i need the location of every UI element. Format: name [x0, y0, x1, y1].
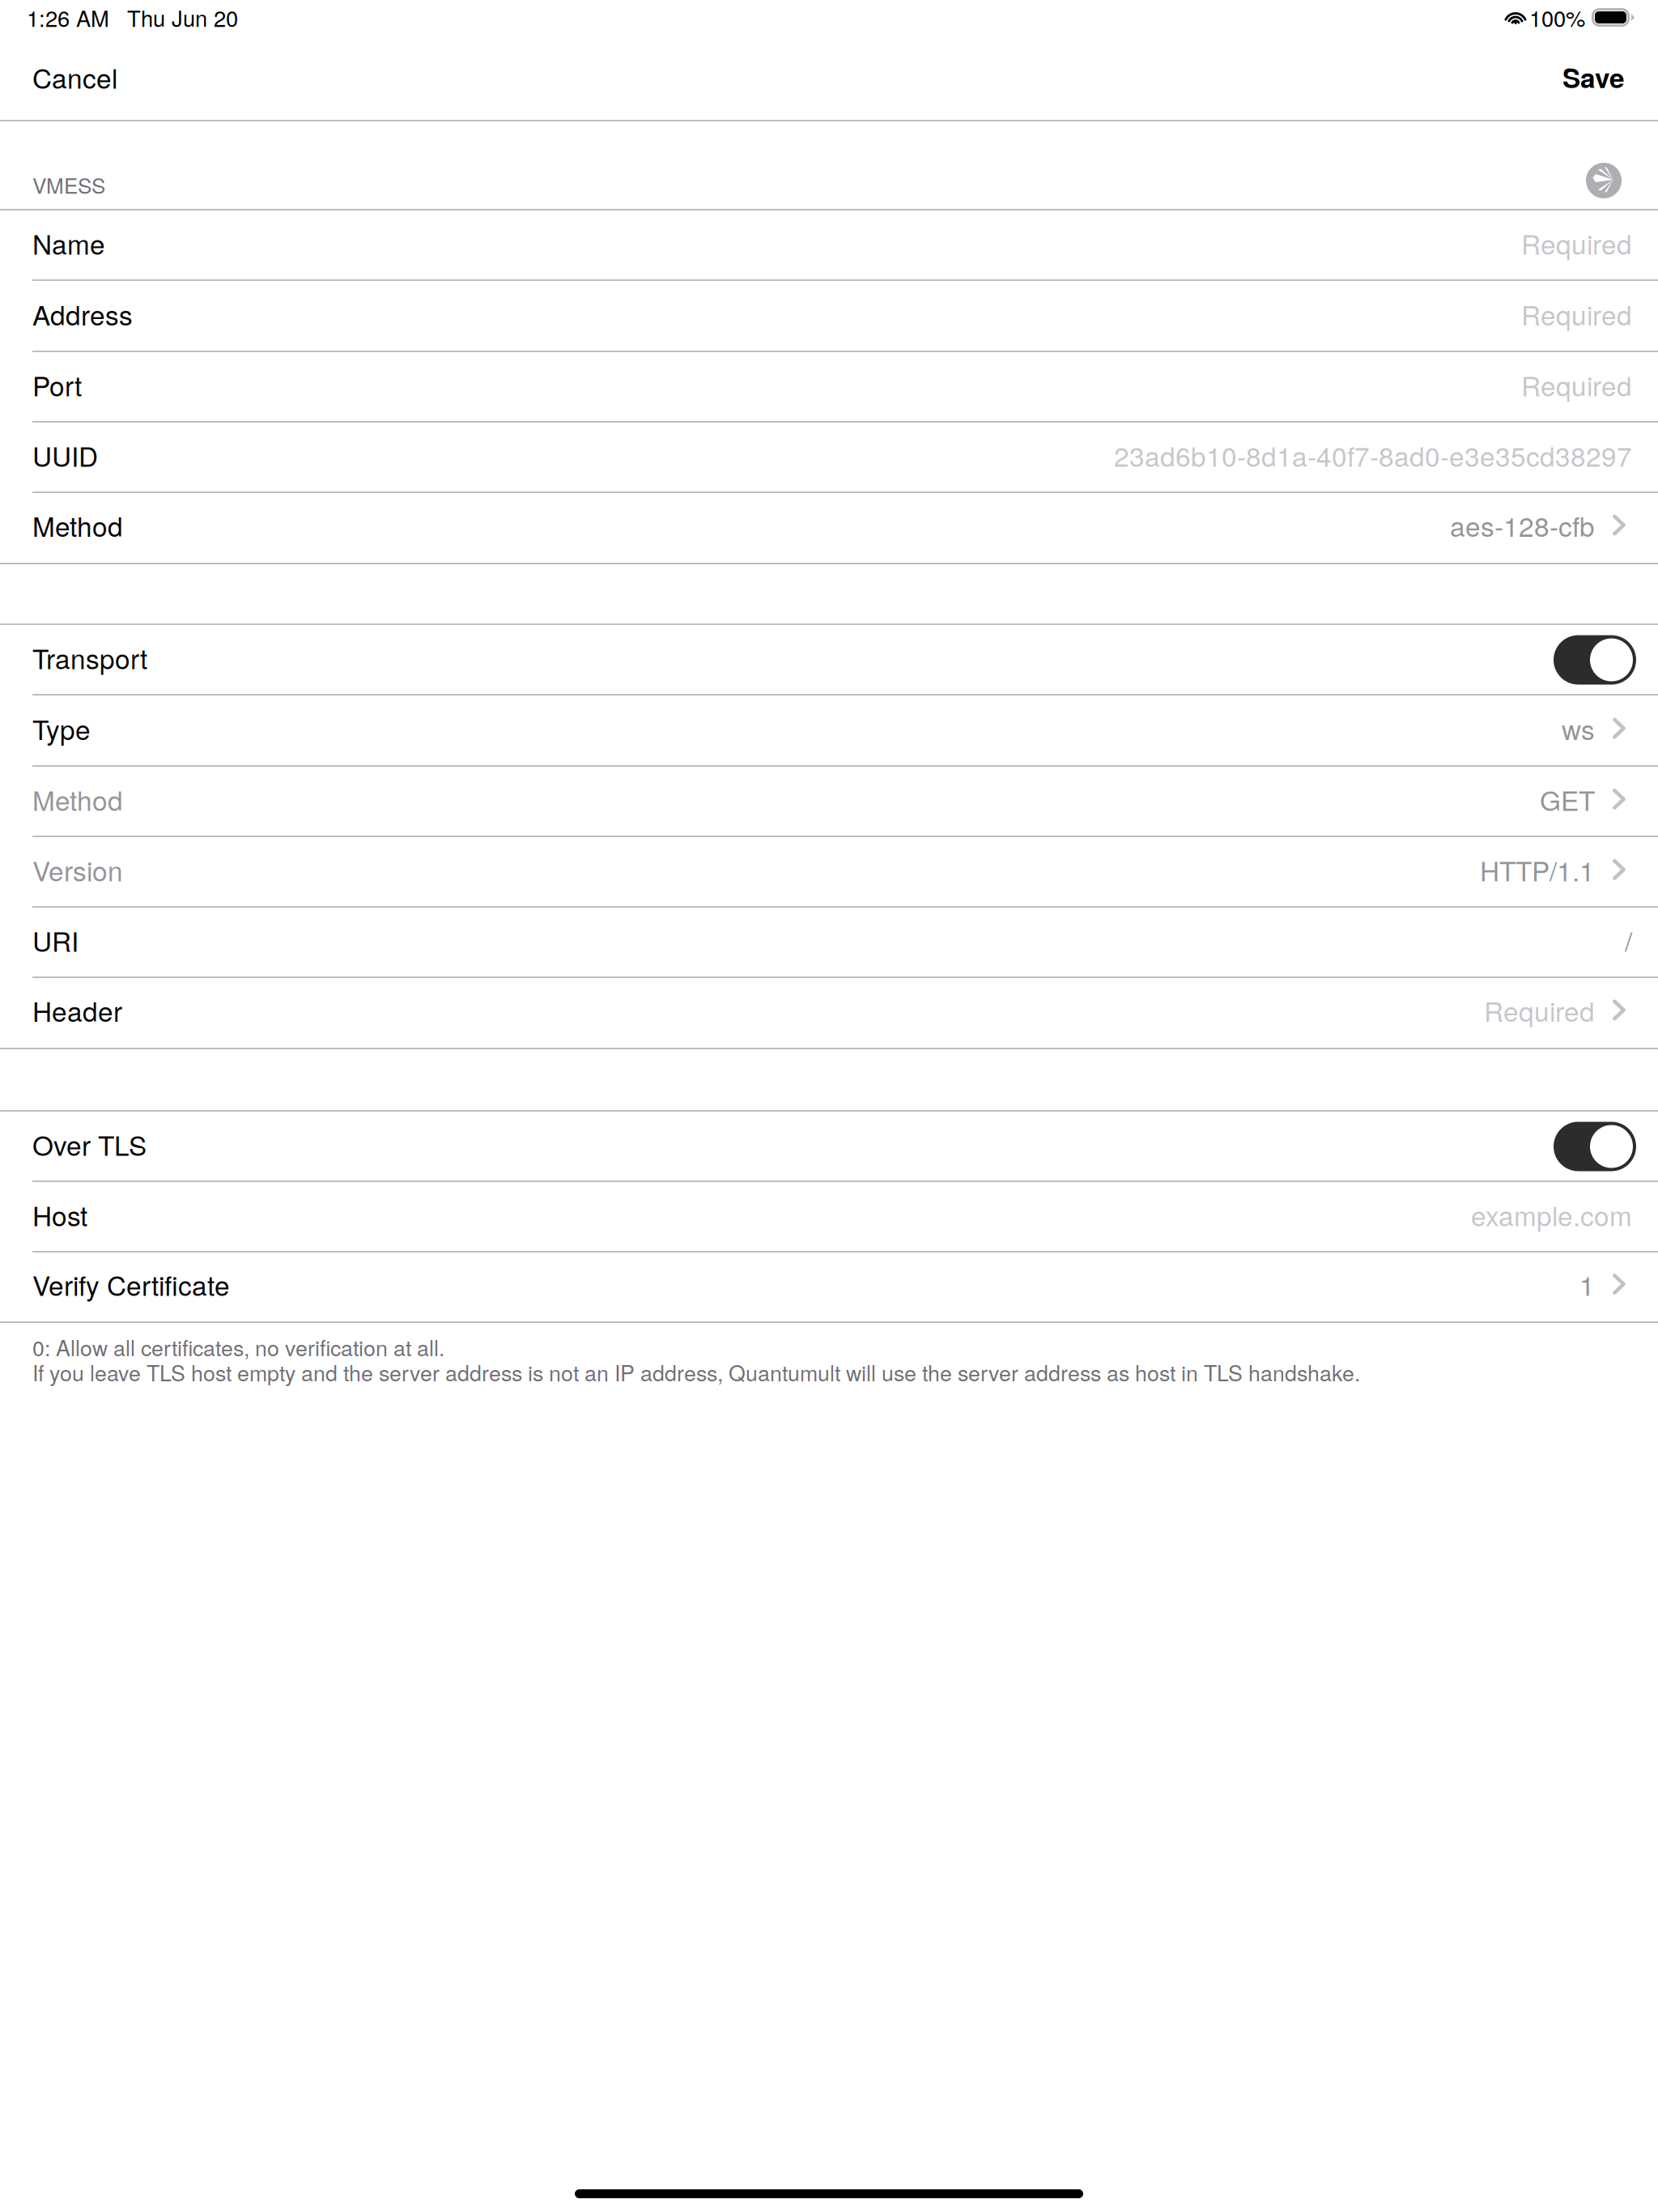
- button[interactable]: Method: [0, 767, 1658, 837]
- button[interactable]: Port: [0, 352, 1658, 423]
- button[interactable]: Method: [0, 493, 1658, 563]
- staticText: Name: [32, 224, 105, 262]
- staticText: Verify Certificate: [32, 1265, 230, 1303]
- button[interactable]: Transport: [0, 625, 1658, 696]
- staticText: Transport: [32, 638, 147, 677]
- staticText: aes-128-cfb: [1450, 506, 1595, 544]
- staticText: 100%: [1529, 2, 1585, 33]
- button[interactable]: Host: [0, 1182, 1658, 1253]
- staticText: 1:26 AM: [27, 2, 109, 33]
- button[interactable]: Address: [0, 281, 1658, 352]
- staticText: If you leave TLS host empty and the serv…: [32, 1357, 1360, 1387]
- staticText: Method: [32, 506, 123, 544]
- button[interactable]: Header: [0, 978, 1658, 1048]
- button[interactable]: Over TLS: [0, 1112, 1658, 1182]
- button[interactable]: Name: [0, 211, 1658, 281]
- staticText: 23ad6b10-8d1a-40f7-8ad0-e3e35cd38297: [1114, 436, 1632, 474]
- button[interactable]: Verify Certificate: [0, 1253, 1658, 1321]
- staticText: Over TLS: [32, 1125, 147, 1163]
- staticText: Version: [32, 850, 123, 889]
- staticText: Port: [32, 365, 82, 404]
- button[interactable]: UUID: [0, 423, 1658, 493]
- staticText: Required: [1521, 294, 1632, 333]
- staticText: Thu Jun 20: [127, 2, 238, 33]
- button[interactable]: URI: [0, 908, 1658, 978]
- staticText: Header: [32, 991, 122, 1029]
- staticText: HTTP/1.1: [1480, 850, 1595, 889]
- staticText: Cancel: [32, 58, 117, 96]
- staticText: Required: [1521, 224, 1632, 262]
- staticText: Save: [1562, 58, 1625, 96]
- staticText: /: [1625, 921, 1632, 959]
- button[interactable]: Type: [0, 696, 1658, 767]
- staticText: 0: Allow all certificates, no verificati…: [32, 1331, 444, 1362]
- button[interactable]: Quantumult X: [1586, 163, 1622, 206]
- staticText: 1: [1579, 1265, 1595, 1303]
- staticText: Address: [32, 294, 133, 333]
- staticText: Required: [1484, 991, 1595, 1029]
- button[interactable]: Cancel: [0, 39, 137, 120]
- staticText: ws: [1562, 709, 1595, 748]
- staticText: VMESS: [32, 170, 105, 200]
- staticText: GET: [1540, 780, 1595, 818]
- staticText: Method: [32, 780, 123, 818]
- staticText: Required: [1521, 365, 1632, 404]
- staticText: example.com: [1471, 1195, 1632, 1234]
- button[interactable]: Save: [1543, 39, 1658, 120]
- staticText: Host: [32, 1195, 87, 1234]
- staticText: Type: [32, 709, 91, 748]
- button[interactable]: Version: [0, 837, 1658, 908]
- staticText: URI: [32, 921, 79, 959]
- staticText: UUID: [32, 436, 98, 474]
